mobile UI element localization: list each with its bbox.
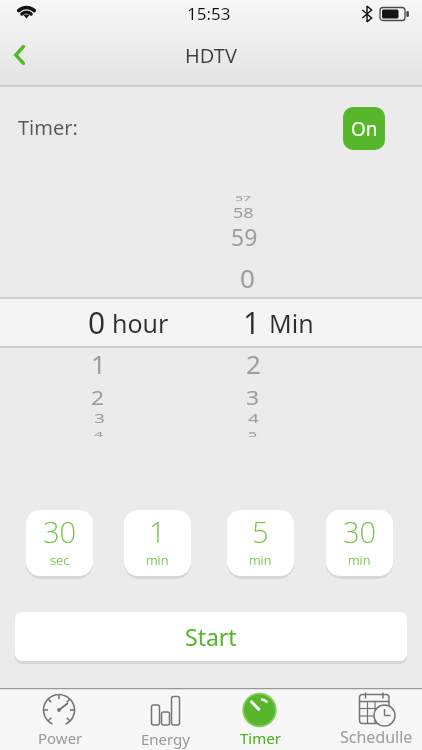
staticText: 3 — [94, 411, 105, 427]
staticText: 4 — [94, 429, 104, 439]
staticText: 2 — [246, 346, 261, 381]
staticText: 30 — [343, 512, 377, 551]
staticText: 3 — [246, 382, 260, 410]
staticText: Timer — [240, 728, 281, 748]
staticText: min — [146, 551, 169, 569]
staticText: 0 — [240, 260, 255, 295]
staticText: 5 — [252, 512, 269, 551]
staticText: 58 — [233, 202, 254, 222]
staticText: 2 — [91, 382, 105, 410]
staticText: 15:53 — [187, 2, 231, 25]
staticText: min — [348, 551, 371, 569]
staticText: Energy — [141, 729, 190, 749]
staticText: Start — [185, 621, 237, 652]
staticText: 1 — [91, 346, 106, 381]
staticText: HDTV — [185, 42, 237, 69]
staticText: Timer: — [18, 114, 78, 141]
staticText: 5 — [248, 429, 258, 439]
staticText: 57 — [235, 194, 252, 203]
staticText: 30 — [43, 512, 77, 551]
staticText: hour — [112, 306, 169, 340]
staticText: 1 — [149, 512, 166, 551]
staticText: Schedulle — [340, 726, 413, 748]
staticText: sec — [50, 551, 70, 569]
staticText: Min — [269, 306, 314, 340]
staticText: On — [351, 116, 378, 142]
staticText: 0 — [88, 302, 106, 343]
staticText: 4 — [248, 411, 259, 427]
staticText: 59 — [231, 221, 258, 252]
staticText: 1 — [243, 302, 261, 343]
staticText: min — [249, 551, 272, 569]
staticText: Power — [38, 728, 83, 748]
